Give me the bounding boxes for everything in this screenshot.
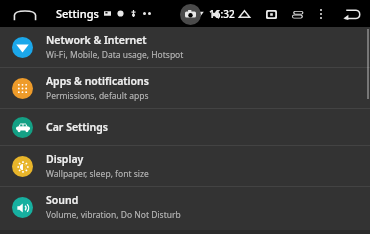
staticText: Wi-Fi, Mobile, Data usage, Hotspot bbox=[46, 49, 184, 61]
button[interactable]: Sound bbox=[0, 187, 370, 227]
staticText: Settings bbox=[56, 6, 99, 21]
button[interactable]: Home bbox=[8, 2, 42, 26]
button[interactable]: Apps & notifications bbox=[0, 68, 370, 108]
staticText: Permissions, default apps bbox=[46, 90, 149, 102]
staticText: Network & Internet bbox=[46, 33, 147, 47]
staticText: Apps & notifications bbox=[46, 74, 149, 88]
button[interactable]: More options bbox=[314, 4, 328, 24]
staticText: 16:32 bbox=[209, 7, 235, 21]
button[interactable]: Display bbox=[0, 146, 370, 186]
staticText: Car Settings bbox=[46, 120, 108, 134]
staticText: Sound bbox=[46, 193, 79, 207]
button[interactable]: Volume bbox=[207, 4, 227, 24]
staticText: Display bbox=[46, 152, 84, 166]
staticText: Wallpaper, sleep, font size bbox=[46, 168, 149, 180]
button[interactable]: Recents bbox=[288, 4, 308, 24]
button[interactable]: Screenshot bbox=[180, 4, 201, 25]
button[interactable]: Eject bbox=[234, 4, 254, 24]
button[interactable]: Display output bbox=[261, 4, 281, 24]
button[interactable]: Car Settings bbox=[0, 109, 370, 145]
button[interactable]: Network & Internet bbox=[0, 27, 370, 67]
staticText: Volume, vibration, Do Not Disturb bbox=[46, 209, 181, 221]
button[interactable]: Back bbox=[338, 3, 366, 25]
